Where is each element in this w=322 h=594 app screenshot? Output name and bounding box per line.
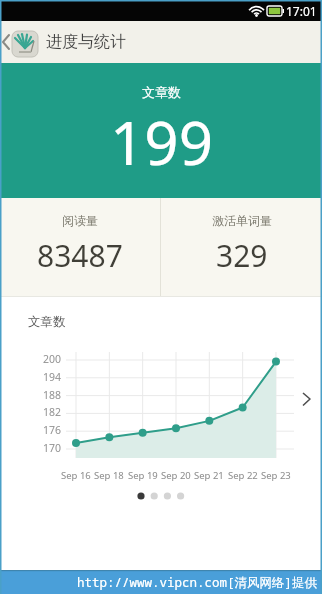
staticText: 199	[110, 101, 213, 183]
staticText: 文章数	[28, 314, 66, 330]
staticText: 200	[43, 352, 62, 366]
staticText: 194	[43, 370, 62, 384]
staticText: Sep 22	[228, 469, 258, 482]
staticText: 329	[216, 235, 268, 276]
staticText: 文章数	[142, 84, 181, 100]
staticText: 激活单词量	[212, 213, 272, 228]
staticText: 17:01	[286, 3, 317, 19]
staticText: 83487	[37, 235, 123, 276]
button[interactable]: http://www.vipcn.com[清风网络]提供	[0, 570, 322, 594]
staticText: 170	[43, 441, 62, 455]
button[interactable]: 阅读量	[0, 198, 160, 297]
staticText: 阅读量	[62, 213, 98, 228]
button[interactable]: 进度与统计	[0, 21, 126, 63]
staticText: 188	[43, 388, 62, 402]
staticText: 176	[43, 423, 62, 437]
staticText: 进度与统计	[46, 32, 126, 52]
staticText: 182	[43, 405, 62, 419]
button[interactable]: 激活单词量	[161, 198, 322, 297]
staticText: http://www.vipcn.com[清风网络]提供	[77, 574, 318, 591]
button[interactable]: 文章数	[0, 63, 322, 198]
staticText: Sep 16	[61, 469, 91, 482]
staticText: Sep 21	[194, 469, 224, 482]
staticText: Sep 19	[128, 469, 158, 482]
staticText: Sep 23	[261, 469, 291, 482]
staticText: Sep 18	[94, 469, 124, 482]
staticText: Sep 20	[161, 469, 191, 482]
button[interactable]	[0, 300, 322, 510]
